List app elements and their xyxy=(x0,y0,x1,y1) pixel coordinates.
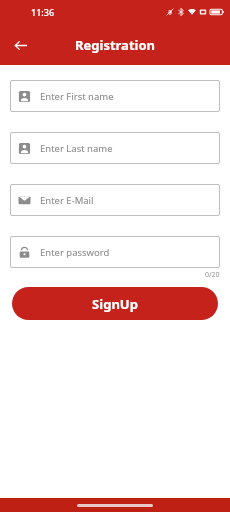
button[interactable]: Enter password xyxy=(10,236,220,268)
staticText: 11:36 xyxy=(31,6,55,18)
button[interactable]: SignUp xyxy=(12,287,218,320)
staticText: SignUp xyxy=(92,295,138,313)
staticText: Enter Last name xyxy=(40,142,113,155)
button[interactable]: Enter E-Mail xyxy=(10,184,220,216)
button[interactable]: Back xyxy=(7,32,33,58)
button[interactable]: Enter First name xyxy=(10,80,220,112)
staticText: Enter password xyxy=(40,246,110,259)
staticText: Enter E-Mail xyxy=(40,194,94,207)
staticText: Registration xyxy=(75,36,156,54)
staticText: Enter First name xyxy=(40,90,114,103)
button[interactable]: Enter Last name xyxy=(10,132,220,164)
staticText: 0/20 xyxy=(205,270,220,280)
